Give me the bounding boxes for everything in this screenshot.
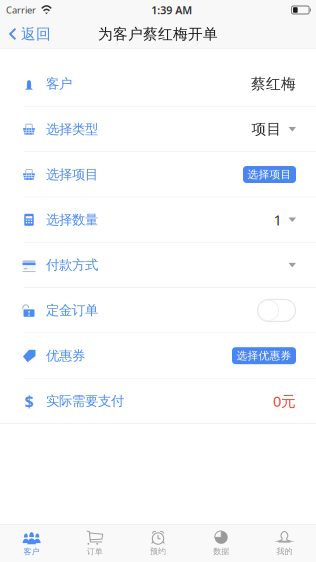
staticText: 定金订单 [46, 302, 98, 319]
staticText: 客户 [24, 547, 40, 556]
staticText: 选择优惠券 [236, 349, 291, 362]
button[interactable]: 选择优惠券 [232, 347, 296, 364]
staticText: 选择项目 [247, 168, 291, 181]
staticText: Carrier [6, 4, 36, 16]
staticText: 蔡红梅 [251, 75, 296, 93]
button[interactable]: 选择类型 [0, 107, 316, 152]
staticText: 订单 [87, 547, 103, 556]
staticText: 付款方式 [46, 257, 98, 273]
button[interactable]: 订单 [63, 526, 126, 560]
staticText: 返回 [21, 25, 51, 43]
button[interactable]: $ [0, 379, 316, 424]
button[interactable]: 选择项目 [0, 152, 316, 197]
button[interactable]: 选择数量 [0, 197, 316, 243]
staticText: 选择数量 [46, 212, 98, 228]
staticText: 1:39 AM [151, 3, 192, 17]
staticText: $ [24, 390, 33, 412]
button[interactable]: 优惠券 [0, 333, 316, 379]
button[interactable]: 客户 [0, 61, 316, 107]
staticText: 选择类型 [46, 121, 98, 137]
staticText: 项目 [251, 120, 281, 138]
staticText: 预约 [150, 546, 166, 556]
staticText: 为客户蔡红梅开单 [98, 25, 218, 43]
staticText: 0元 [273, 391, 296, 411]
button[interactable]: 数据 [190, 526, 253, 560]
button[interactable]: 客户 [0, 526, 63, 560]
staticText: 我的 [276, 546, 292, 556]
button[interactable]: 我的 [253, 526, 316, 560]
staticText: 选择项目 [46, 166, 98, 183]
staticText: 客户 [46, 76, 72, 92]
button[interactable]: 付款方式 [0, 243, 316, 288]
staticText: 1 [273, 210, 281, 230]
button[interactable]: 选择项目 [243, 166, 296, 183]
button[interactable]: 定金订单 [0, 288, 316, 333]
button[interactable]: 返回 [0, 21, 51, 47]
button[interactable]: 预约 [126, 526, 190, 560]
staticText: 优惠券 [46, 347, 85, 364]
staticText: 实际需要支付 [46, 393, 124, 409]
button[interactable]: 定金订单开关 [257, 299, 296, 322]
staticText: 数据 [213, 546, 229, 556]
